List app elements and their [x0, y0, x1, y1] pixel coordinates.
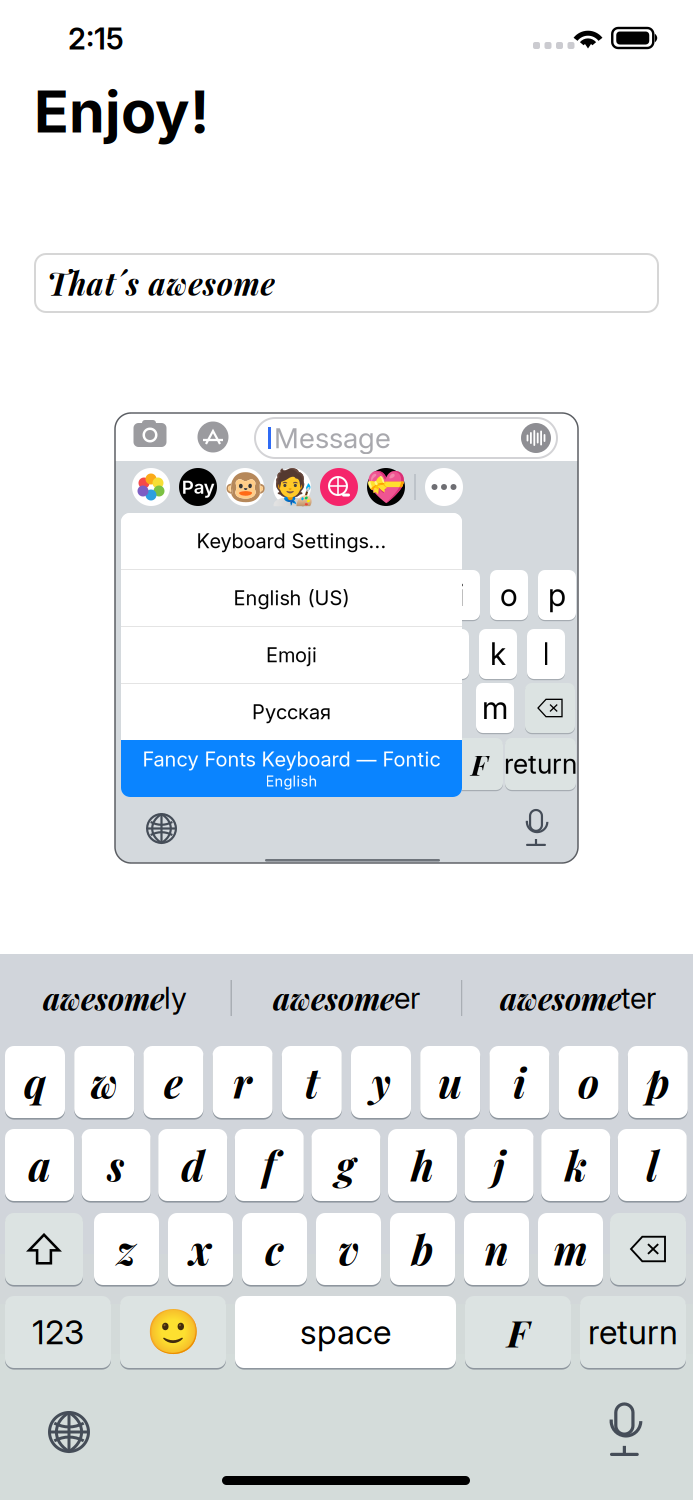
staticText: d: [181, 1138, 204, 1192]
staticText: return: [588, 1312, 678, 1352]
button[interactable]: j: [115, 413, 153, 463]
button[interactable]: i: [489, 1045, 549, 1119]
button[interactable]: e: [143, 1045, 203, 1119]
staticText: m: [553, 1222, 587, 1276]
button[interactable]: j: [465, 1128, 534, 1202]
staticText: k: [490, 635, 506, 672]
button[interactable]: x: [168, 1212, 233, 1286]
staticText: f: [262, 1138, 276, 1192]
staticText: g: [336, 1138, 355, 1192]
button[interactable]: p: [115, 413, 153, 463]
staticText: x: [189, 1222, 212, 1276]
button[interactable]: 🐵: [226, 468, 264, 506]
staticText: awesome: [273, 978, 394, 1018]
button[interactable]: [132, 468, 170, 506]
staticText: m: [482, 689, 508, 726]
staticText: English (US): [233, 586, 349, 610]
button[interactable]: awesome: [232, 954, 461, 1042]
staticText: a: [28, 1138, 50, 1192]
button[interactable]: 123: [5, 1295, 111, 1369]
button[interactable]: f: [235, 1128, 304, 1202]
button[interactable]: p: [628, 1045, 688, 1119]
button[interactable]: m: [115, 413, 153, 463]
button[interactable]: s: [82, 1128, 151, 1202]
button[interactable]: l: [115, 413, 153, 463]
staticText: F: [507, 1307, 529, 1357]
staticText: 🧑‍🎨: [270, 467, 313, 507]
button[interactable]: return: [115, 413, 186, 465]
staticText: n: [484, 1222, 508, 1276]
button[interactable]: 💝: [367, 468, 405, 506]
button[interactable]: i: [115, 413, 153, 463]
button[interactable]: r: [213, 1045, 273, 1119]
button[interactable]: Русская: [121, 684, 462, 740]
button[interactable]: w: [74, 1045, 134, 1119]
button[interactable]: [179, 468, 217, 506]
button[interactable]: Shift: [5, 1212, 83, 1286]
staticText: Keyboard Settings...: [196, 529, 386, 553]
button[interactable]: y: [351, 1045, 411, 1119]
button[interactable]: n: [464, 1212, 529, 1286]
staticText: Pay: [182, 476, 215, 498]
staticText: h: [411, 1138, 434, 1192]
staticText: ter: [621, 980, 656, 1016]
staticText: English: [265, 772, 317, 790]
staticText: w: [91, 1055, 118, 1109]
staticText: return: [504, 748, 577, 780]
staticText: e: [164, 1055, 183, 1109]
button[interactable]: u: [420, 1045, 480, 1119]
staticText: awesome: [500, 978, 621, 1018]
button[interactable]: English (US): [121, 570, 462, 626]
staticText: 💝: [366, 468, 406, 506]
staticText: space: [300, 1312, 391, 1352]
button[interactable]: k: [541, 1128, 610, 1202]
button[interactable]: Dictate: [608, 1404, 641, 1456]
button[interactable]: v: [316, 1212, 381, 1286]
button[interactable]: Keyboard Settings...: [121, 513, 462, 569]
button[interactable]: App Store: [196, 420, 230, 454]
staticText: Enjoy!: [34, 77, 209, 146]
button[interactable]: awesome: [0, 954, 230, 1042]
button[interactable]: h: [388, 1128, 457, 1202]
button[interactable]: l: [618, 1128, 687, 1202]
button[interactable]: o: [115, 413, 153, 463]
button[interactable]: 🧑‍🎨: [273, 468, 311, 506]
button[interactable]: [120, 1295, 226, 1369]
staticText: c: [265, 1222, 284, 1276]
button[interactable]: F: [465, 1295, 571, 1369]
button[interactable]: k: [115, 413, 153, 463]
button[interactable]: c: [242, 1212, 307, 1286]
button[interactable]: o: [559, 1045, 619, 1119]
staticText: 🙂: [145, 1306, 200, 1358]
staticText: l: [542, 635, 549, 672]
button[interactable]: d: [158, 1128, 227, 1202]
button[interactable]: Emoji keyboard: [120, 1295, 226, 1369]
button[interactable]: space: [235, 1295, 456, 1369]
button[interactable]: awesome: [462, 954, 693, 1042]
button[interactable]: Fancy Fonts Keyboard — Fontic: [121, 740, 462, 797]
button[interactable]: z: [94, 1212, 159, 1286]
button[interactable]: g: [311, 1128, 380, 1202]
button[interactable]: [5, 1212, 83, 1286]
button[interactable]: a: [5, 1128, 74, 1202]
button[interactable]: [425, 468, 463, 506]
button[interactable]: [320, 468, 358, 506]
button[interactable]: m: [538, 1212, 603, 1286]
button[interactable]: [610, 1212, 686, 1286]
staticText: y: [371, 1055, 390, 1109]
staticText: ly: [164, 980, 187, 1016]
button[interactable]: Camera: [133, 421, 167, 449]
button[interactable]: t: [282, 1045, 342, 1119]
staticText: 🐵: [223, 467, 266, 507]
staticText: o: [500, 576, 518, 613]
button[interactable]: Next keyboard: [48, 1411, 90, 1453]
staticText: Русская: [252, 700, 331, 724]
staticText: r: [233, 1055, 252, 1109]
button[interactable]: q: [5, 1045, 65, 1119]
button[interactable]: Delete: [610, 1212, 686, 1286]
button[interactable]: Emoji: [121, 627, 462, 683]
button[interactable]: return: [580, 1295, 686, 1369]
button[interactable]: b: [390, 1212, 455, 1286]
staticText: awesome: [43, 978, 164, 1018]
